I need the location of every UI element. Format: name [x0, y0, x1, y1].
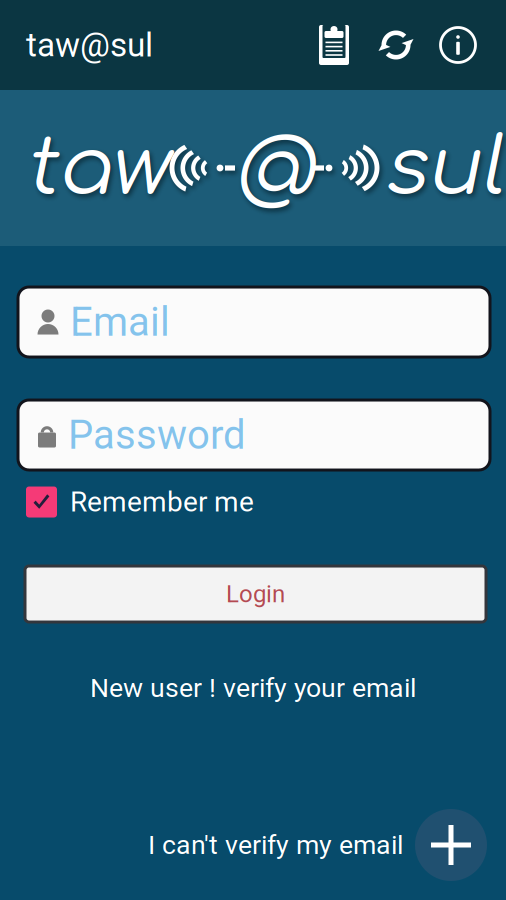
- button[interactable]: Notes: [303, 0, 365, 90]
- staticText: taw@sul: [26, 25, 153, 65]
- button[interactable]: Login: [25, 566, 486, 622]
- button[interactable]: I can't verify my email: [148, 818, 403, 872]
- staticText: taw: [24, 123, 167, 213]
- staticText: Email: [70, 299, 170, 345]
- staticText: Password: [68, 412, 246, 458]
- staticText: I can't verify my email: [148, 829, 403, 861]
- button[interactable]: Remember me: [0, 480, 506, 524]
- button[interactable]: Info: [427, 0, 489, 90]
- staticText: Login: [226, 580, 285, 608]
- staticText: @: [235, 128, 314, 208]
- staticText: Remember me: [70, 486, 254, 518]
- button[interactable]: New user ! verify your email: [0, 668, 506, 708]
- staticText: sul: [382, 123, 502, 213]
- button[interactable]: Refresh: [365, 0, 427, 90]
- button[interactable]: Add: [415, 809, 487, 881]
- staticText: New user ! verify your email: [90, 672, 416, 704]
